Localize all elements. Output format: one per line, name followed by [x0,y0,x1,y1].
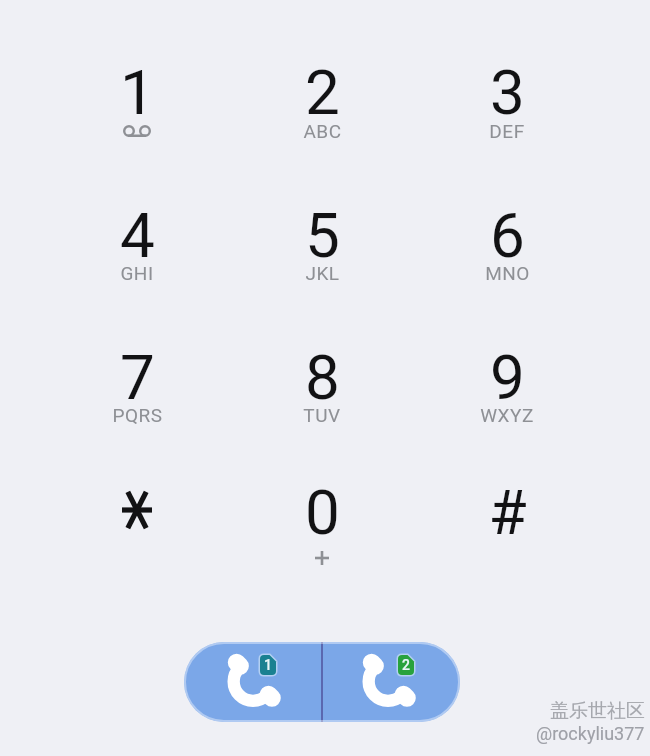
button[interactable]: 5 [229,199,415,272]
staticText: TUV [303,404,341,426]
staticText: 2 [305,56,340,129]
staticText: GHI [120,262,154,284]
button[interactable]: 4 [44,199,230,272]
button[interactable]: 1 [44,56,230,129]
button[interactable]: 9 [414,341,600,414]
staticText: PQRS [112,404,163,426]
button[interactable]: # [414,476,600,549]
staticText: 7 [120,341,155,414]
staticText: 9 [490,341,525,414]
button[interactable] [44,460,230,560]
button[interactable]: 8 [229,341,415,414]
staticText: @rockyliu377 [536,723,645,744]
staticText: 1 [120,56,155,129]
staticText: 4 [120,199,155,272]
button[interactable]: 2 [323,642,460,722]
staticText: ABC [303,120,342,142]
staticText: 6 [490,199,525,272]
button[interactable]: 7 [44,341,230,414]
button[interactable]: 3 [414,56,600,129]
staticText: MNO [485,262,530,284]
button[interactable]: 2 [229,56,415,129]
staticText: 1 [264,657,272,673]
staticText: WXYZ [480,404,534,426]
staticText: 5 [305,199,340,272]
staticText: 0 [305,476,340,549]
staticText: DEF [489,120,525,142]
staticText: JKL [305,262,340,284]
button[interactable]: 1 [184,642,321,722]
staticText: 盖乐世社区 [550,699,645,723]
button[interactable]: 6 [414,199,600,272]
staticText: 3 [490,56,525,129]
staticText: 8 [305,341,340,414]
staticText: 2 [402,657,410,673]
staticText: # [488,476,527,549]
button[interactable]: 0 [229,476,415,549]
